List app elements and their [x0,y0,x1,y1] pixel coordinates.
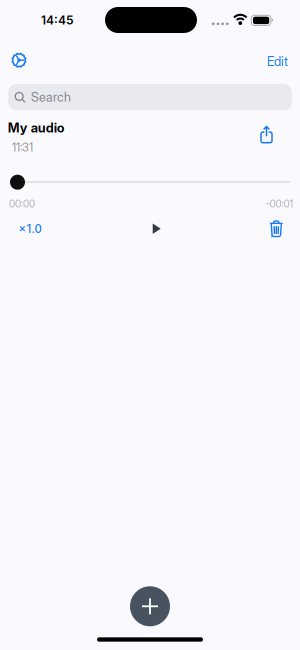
staticText: ×1.0 [18,222,41,236]
button[interactable]: Search [8,84,292,110]
button[interactable]: Delete [269,220,283,238]
staticText: 14:45 [41,13,74,27]
button[interactable]: Edit [267,54,288,69]
staticText: 11:31 [12,141,33,154]
button[interactable]: Playback speed [18,222,41,236]
staticText: Search [31,89,71,105]
button[interactable]: Share [260,125,274,143]
staticText: -00:01 [265,198,293,210]
button[interactable]: Play [152,223,161,234]
button[interactable]: Record [130,586,170,626]
button[interactable]: Settings [9,50,29,70]
staticText: 00:00 [9,198,35,210]
staticText: Edit [267,54,288,69]
staticText: My audio [8,120,65,136]
